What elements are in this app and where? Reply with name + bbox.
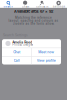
button[interactable]: Contacts: [33, 0, 50, 8]
staticText: Meet now: [38, 50, 54, 54]
staticText: Contacts: [36, 5, 48, 8]
button[interactable]: Settings: [50, 0, 67, 8]
staticText: Product Designer: [12, 43, 33, 46]
staticText: Matching the reference: [15, 16, 52, 19]
staticText: closely as the fonts allow.: [12, 22, 54, 25]
staticText: Call: [14, 58, 20, 62]
button[interactable]: View profile: [32, 56, 61, 64]
staticText: Search: [3, 5, 13, 8]
button[interactable]: Amelia Reed: [2, 39, 61, 48]
button[interactable]: Search: [0, 0, 17, 8]
button[interactable]: Meet now: [32, 48, 61, 56]
staticText: Settings: [53, 5, 65, 8]
staticText: Chats: [22, 5, 29, 8]
staticText: View profile: [37, 58, 56, 62]
staticText: Chat: [13, 50, 20, 54]
staticText: layout, spacing and colours as: [8, 19, 58, 22]
button[interactable]: Chat: [2, 48, 31, 56]
button[interactable]: Call: [2, 56, 31, 64]
staticText: Available area: 67 × 92: [14, 9, 53, 14]
staticText: Amelia Reed: [12, 40, 32, 44]
button[interactable]: Chats: [17, 0, 34, 8]
staticText: Search Settings: [3, 33, 28, 37]
